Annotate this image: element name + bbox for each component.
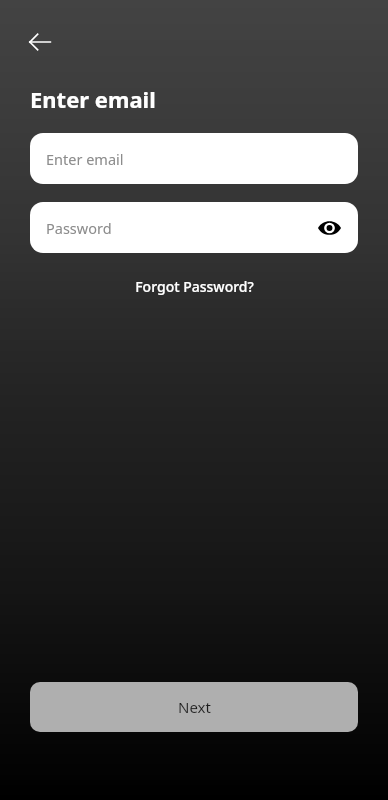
staticText: Forgot Password? — [135, 277, 254, 296]
button[interactable]: Back — [18, 20, 62, 64]
staticText: Next — [178, 697, 211, 717]
button[interactable]: Next — [30, 682, 358, 732]
staticText: Enter email — [46, 149, 124, 169]
button[interactable]: Password — [30, 202, 358, 253]
staticText: Enter email — [30, 84, 156, 114]
staticText: Password — [46, 218, 112, 238]
button[interactable]: Show password — [312, 211, 346, 245]
button[interactable]: Enter email — [30, 133, 358, 184]
button[interactable]: Forgot Password? — [127, 273, 262, 300]
